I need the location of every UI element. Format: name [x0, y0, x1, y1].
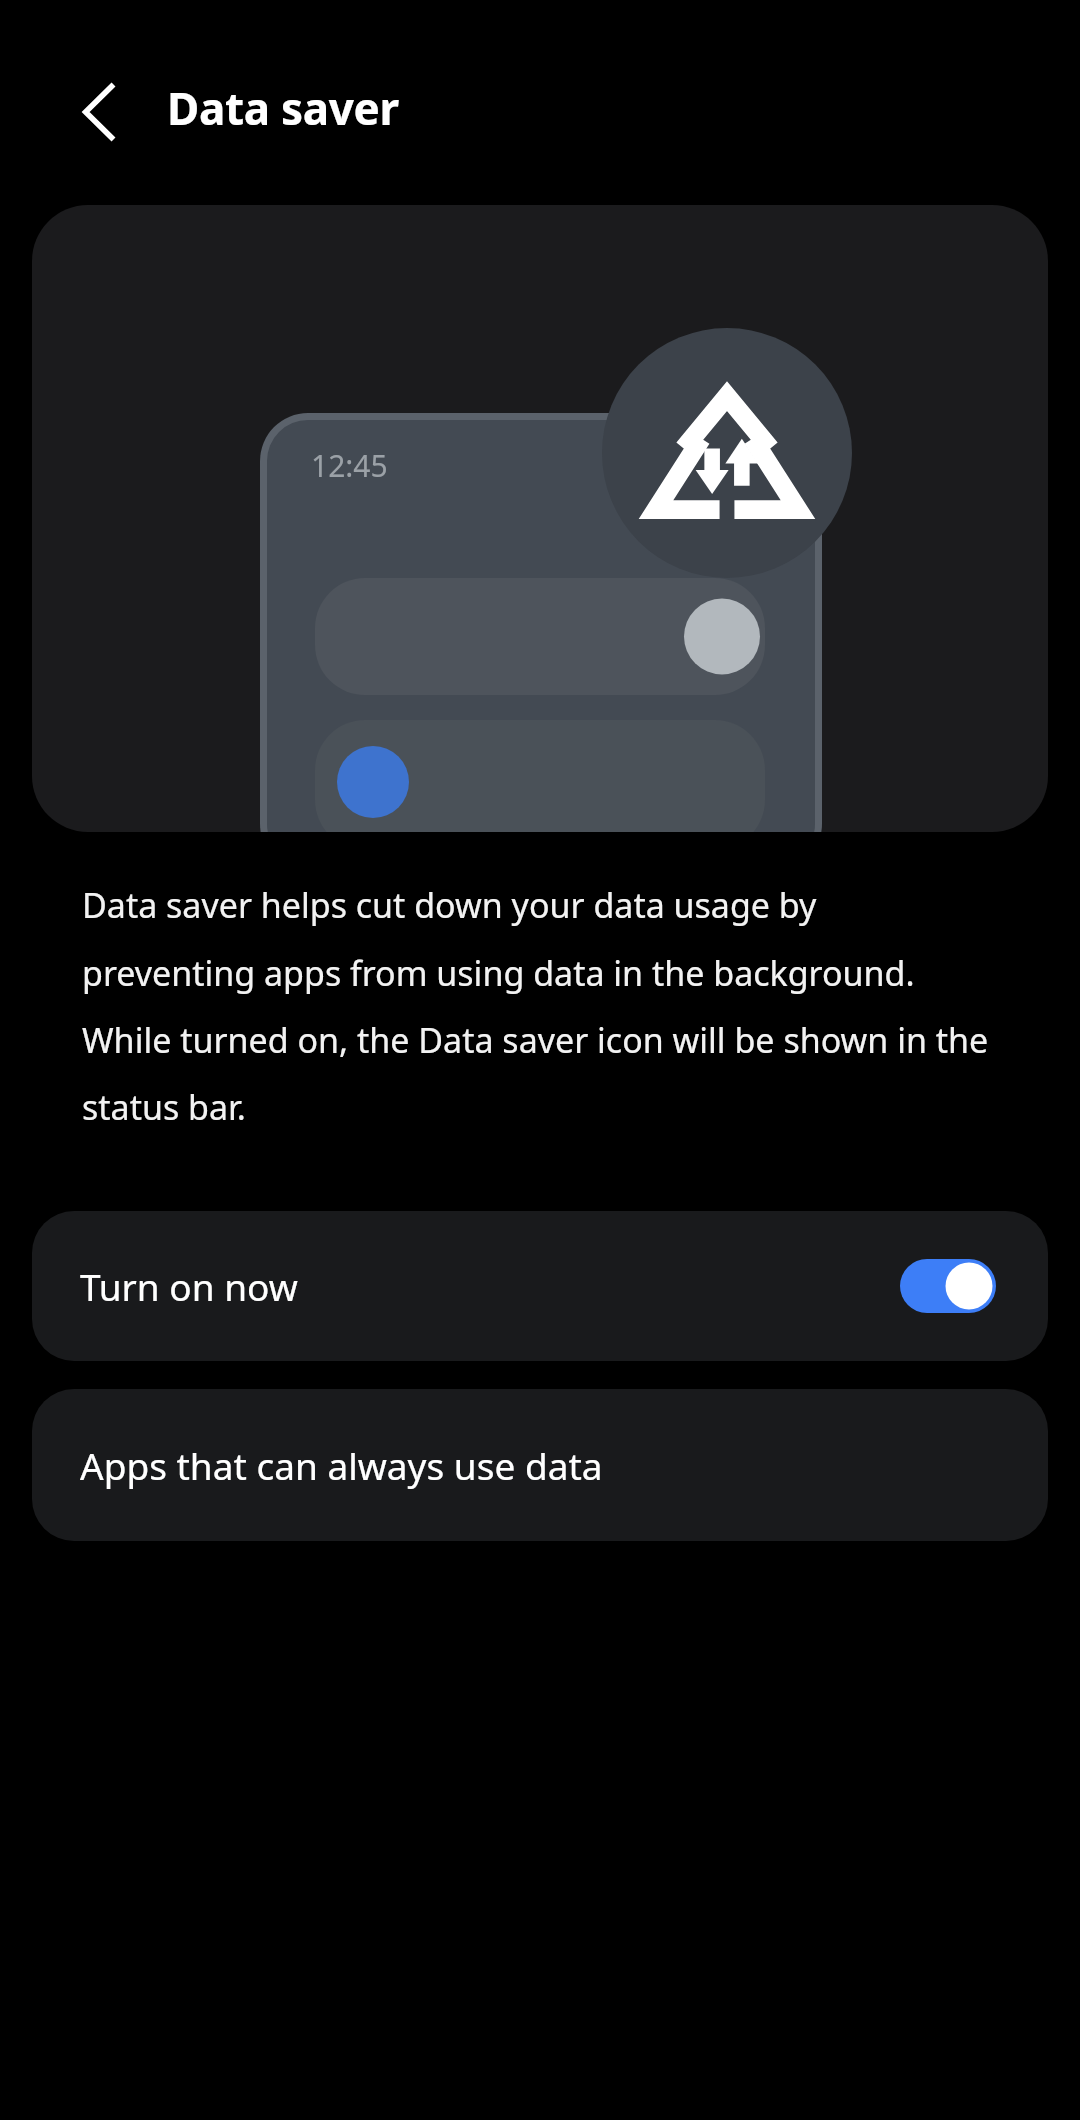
staticText: Data saver [167, 78, 399, 138]
staticText: 12:45 [311, 445, 388, 486]
staticText: Apps that can always use data [80, 1440, 603, 1490]
button[interactable]: Apps that can always use data [32, 1389, 1048, 1541]
staticText: Data saver helps cut down your data usag… [82, 882, 994, 1130]
button[interactable]: Back [55, 67, 145, 157]
button[interactable]: Turn on now [32, 1211, 1048, 1361]
staticText: Turn on now [80, 1261, 298, 1311]
